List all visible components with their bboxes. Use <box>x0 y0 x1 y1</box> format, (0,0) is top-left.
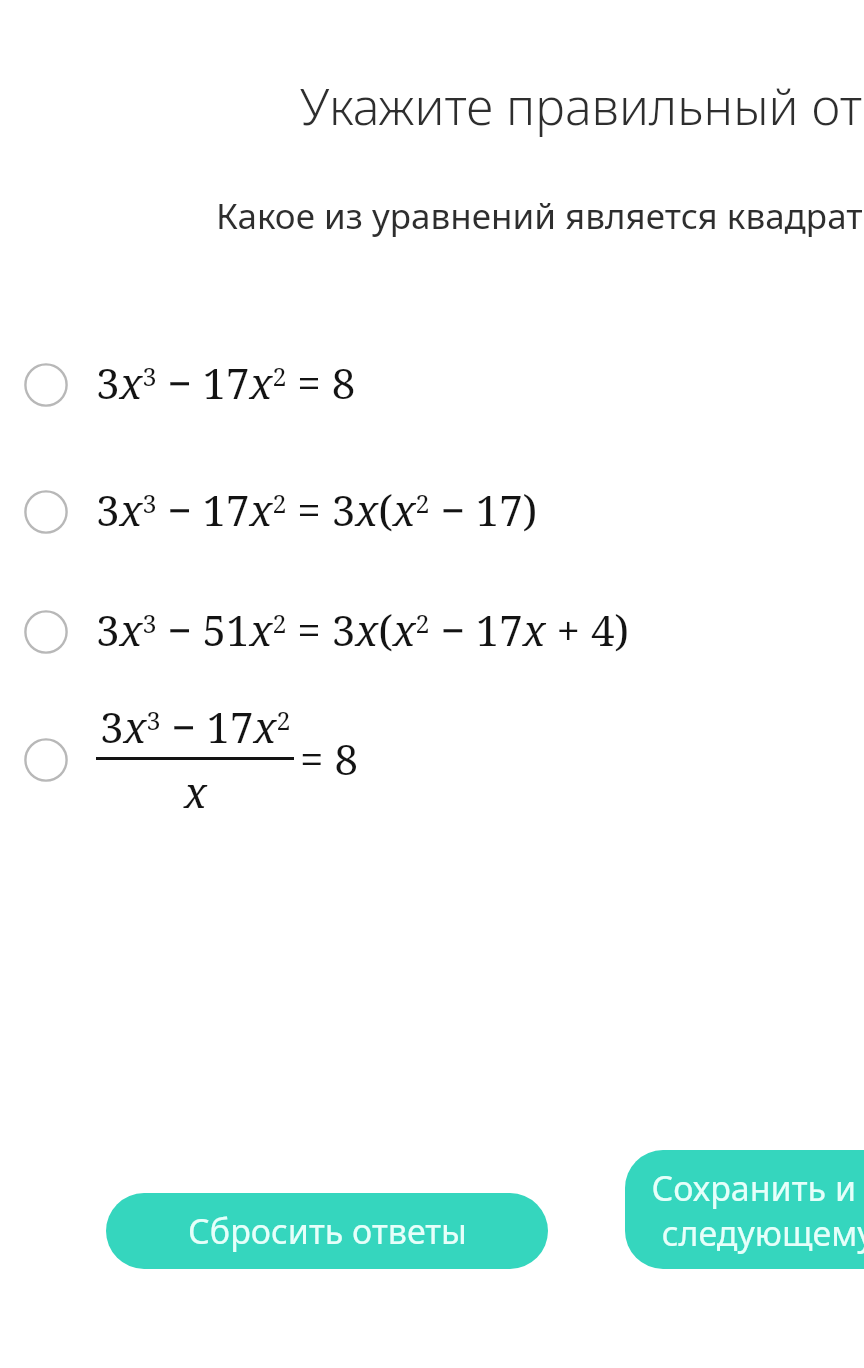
button[interactable]: Сохранить и перейти к следующему вопросу <box>625 1150 864 1269</box>
button[interactable]: Вариант 3 <box>0 592 864 674</box>
button[interactable]: Сбросить ответы <box>106 1193 548 1269</box>
button[interactable]: Вариант 4 <box>0 695 864 815</box>
staticText: Сбросить ответы <box>188 1208 467 1254</box>
staticText: 3x3 − 17x2 = 8 <box>96 354 356 411</box>
staticText: 3x3 − 17x2 <box>100 698 291 755</box>
staticText: Какое из уравнений является квадратным? <box>216 192 864 240</box>
staticText: 3x3 − 17x2 = 3x(x2 − 17) <box>96 481 538 538</box>
button[interactable]: Вариант 1 <box>0 345 864 427</box>
staticText: = 8 <box>300 730 358 787</box>
staticText: Укажите правильный ответ <box>300 72 864 140</box>
button[interactable]: Вариант 2 <box>0 472 864 554</box>
staticText: Сохранить и перейти к следующему вопросу <box>651 1165 864 1255</box>
staticText: x <box>184 763 207 820</box>
staticText: 3x3 − 51x2 = 3x(x2 − 17x + 4) <box>96 601 629 658</box>
